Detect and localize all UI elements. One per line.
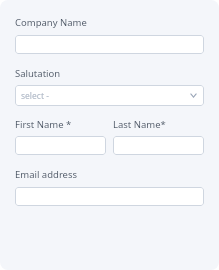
button[interactable]: Company Name bbox=[15, 35, 204, 54]
staticText: Last Name* bbox=[113, 118, 166, 131]
staticText: First Name * bbox=[15, 118, 72, 131]
button[interactable]: Email address bbox=[15, 187, 204, 206]
button[interactable]: First Name bbox=[15, 136, 106, 155]
button[interactable]: Last Name bbox=[113, 136, 204, 155]
button[interactable]: Salutation bbox=[15, 85, 204, 106]
staticText: Company Name bbox=[15, 16, 87, 29]
staticText: select - bbox=[21, 90, 189, 102]
staticText: Email address bbox=[15, 168, 78, 181]
staticText: Salutation bbox=[15, 67, 61, 80]
